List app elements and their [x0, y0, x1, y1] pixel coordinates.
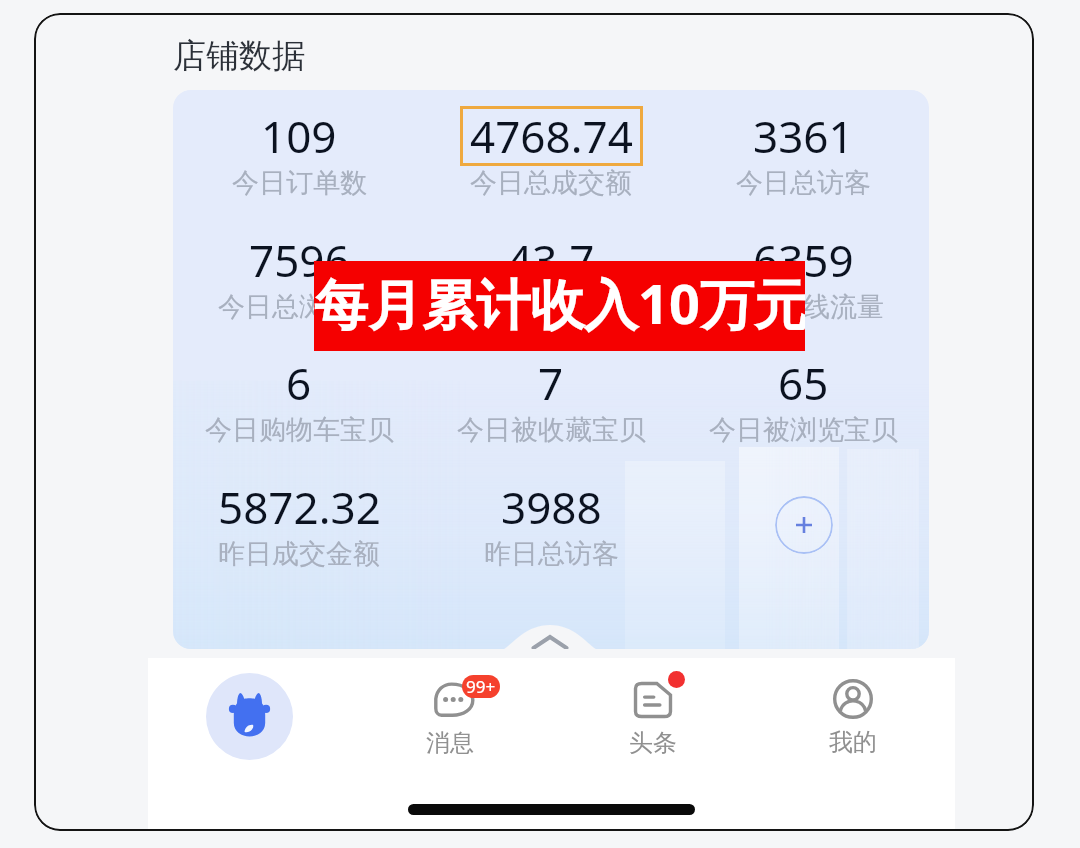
button[interactable]: 4768.74	[425, 106, 677, 200]
staticText: 昨日成交金额	[218, 537, 380, 571]
staticText: 今日总浏览量	[218, 290, 380, 324]
staticText: 今日被浏览宝贝	[709, 413, 898, 447]
staticText: 消息	[426, 728, 474, 758]
button[interactable]: 6359	[677, 230, 929, 324]
button[interactable]: 头条	[603, 673, 703, 778]
staticText: 今日总访客	[736, 166, 871, 200]
button[interactable]: 我的	[803, 673, 903, 778]
staticText: 今日购物车宝贝	[205, 413, 394, 447]
staticText: 每月累计收入10万元	[314, 266, 805, 340]
staticText: 店铺数据	[173, 35, 305, 77]
staticText: 43.7	[507, 230, 595, 290]
staticText: 今日被收藏宝贝	[457, 413, 646, 447]
staticText: 6	[286, 353, 312, 413]
button[interactable]: Add metric	[775, 496, 833, 554]
staticText: 今日成交转化率	[457, 290, 646, 324]
button[interactable]: 109	[173, 106, 425, 200]
button[interactable]: 6	[173, 353, 425, 447]
staticText: 今日订单数	[232, 166, 367, 200]
button[interactable]: 3988	[425, 477, 677, 571]
button[interactable]: Collapse panel	[499, 625, 601, 649]
button[interactable]: 43.7	[425, 230, 677, 324]
staticText: 今日总成交额	[470, 166, 632, 200]
button[interactable]: 99+	[400, 673, 500, 778]
button[interactable]: 7	[425, 353, 677, 447]
staticText: 6359	[753, 230, 854, 290]
button[interactable]: Workbench	[206, 673, 293, 760]
staticText: 今日无线流量	[722, 290, 884, 324]
staticText: 3988	[501, 477, 602, 537]
button[interactable]: 3361	[677, 106, 929, 200]
staticText: 65	[778, 353, 829, 413]
staticText: 99+	[466, 675, 496, 698]
staticText: 头条	[629, 728, 677, 758]
staticText: 109	[261, 106, 337, 166]
staticText: 3361	[753, 106, 854, 166]
staticText: 5872.32	[218, 477, 381, 537]
button[interactable]: 5872.32	[173, 477, 425, 571]
staticText: 7596	[249, 230, 350, 290]
button[interactable]: 65	[677, 353, 929, 447]
staticText: 4768.74	[470, 106, 633, 166]
button[interactable]: 7596	[173, 230, 425, 324]
staticText: 7	[538, 353, 564, 413]
staticText: 我的	[829, 727, 877, 757]
staticText: 昨日总访客	[484, 537, 619, 571]
